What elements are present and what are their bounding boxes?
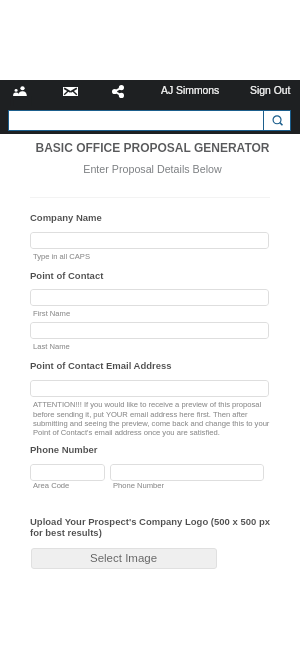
staticText: Last Name xyxy=(33,342,70,350)
button[interactable] xyxy=(30,232,269,249)
staticText: Upload Your Prospect's Company Logo (500… xyxy=(30,516,273,538)
staticText: Select Image xyxy=(90,552,158,565)
staticText: First Name xyxy=(33,309,71,317)
button[interactable]: Search xyxy=(264,110,291,131)
staticText: Area Code xyxy=(33,481,70,489)
staticText: Type in all CAPS xyxy=(33,252,90,260)
button[interactable] xyxy=(30,464,105,481)
button[interactable] xyxy=(110,464,264,481)
staticText: Sign Out xyxy=(250,85,291,97)
staticText: Company Name xyxy=(30,212,102,223)
button[interactable] xyxy=(30,380,269,397)
button[interactable]: Contacts xyxy=(6,80,34,102)
staticText: Phone Number xyxy=(113,481,165,489)
staticText: AJ Simmons xyxy=(161,85,220,97)
staticText: Phone Number xyxy=(30,444,98,455)
button[interactable]: Messages xyxy=(56,80,84,102)
staticText: Enter Proposal Details Below xyxy=(5,163,300,175)
button[interactable]: Sign Out xyxy=(244,80,297,102)
staticText: ATTENTION!!! If you would like to receiv… xyxy=(33,400,270,436)
button[interactable] xyxy=(30,289,269,306)
button[interactable]: AJ Simmons xyxy=(155,80,226,102)
button[interactable]: Share xyxy=(104,80,132,102)
button[interactable] xyxy=(8,110,263,131)
button[interactable] xyxy=(30,322,269,339)
staticText: Point of Contact Email Address xyxy=(30,360,172,371)
staticText: Point of Contact xyxy=(30,270,104,281)
staticText: BASIC OFFICE PROPOSAL GENERATOR xyxy=(5,141,300,154)
button[interactable]: Select Image xyxy=(31,548,217,569)
